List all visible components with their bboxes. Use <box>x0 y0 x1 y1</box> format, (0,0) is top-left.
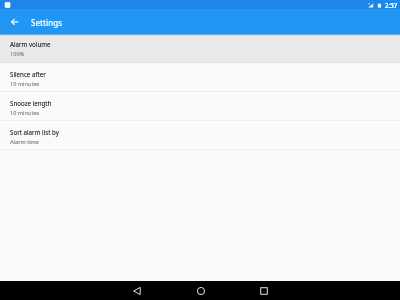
staticText: Snooze length <box>10 99 52 107</box>
staticText: 10 minutes <box>10 109 40 117</box>
staticText: Silence after <box>10 70 46 78</box>
other: Notification <box>0 0 400 9</box>
button[interactable]: Recent apps <box>243 281 284 300</box>
staticText: 2:57 <box>385 1 398 9</box>
staticText: Sort alarm list by <box>10 128 59 136</box>
button[interactable]: Alarm volume <box>0 33 400 62</box>
staticText: Snooze length <box>10 99 52 107</box>
button[interactable]: Sort alarm list by <box>0 121 400 149</box>
staticText: Alarm time <box>10 138 39 146</box>
staticText: Sort alarm list by <box>10 128 59 136</box>
staticText: Settings <box>31 17 63 28</box>
staticText: 10 minutes <box>10 80 40 88</box>
button[interactable]: Back <box>116 281 157 300</box>
staticText: 100% <box>10 50 25 58</box>
button[interactable]: Home <box>180 281 221 300</box>
button[interactable]: Navigate up <box>3 10 25 32</box>
staticText: 2:57 <box>385 1 398 9</box>
staticText: 10 minutes <box>10 109 40 117</box>
staticText: Alarm volume <box>10 40 51 48</box>
staticText: 10 minutes <box>10 80 40 88</box>
staticText: Alarm time <box>10 138 39 146</box>
staticText: Silence after <box>10 70 46 78</box>
button[interactable]: Silence after <box>0 63 400 91</box>
staticText: 100% <box>10 50 25 58</box>
button[interactable]: Snooze length <box>0 92 400 120</box>
staticText: Alarm volume <box>10 40 51 48</box>
